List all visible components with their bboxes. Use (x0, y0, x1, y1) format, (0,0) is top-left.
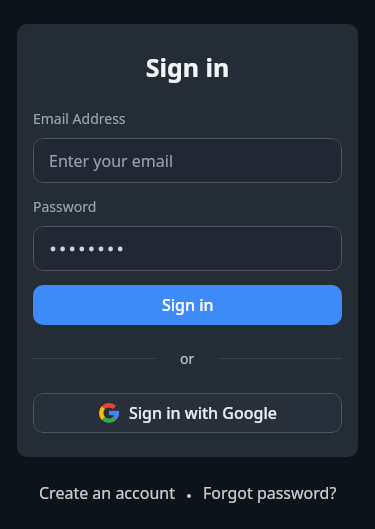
staticText: or (180, 349, 195, 368)
staticText: Email Address (33, 109, 126, 128)
button[interactable] (33, 226, 342, 271)
button[interactable]: Enter your email (33, 138, 342, 183)
staticText: Enter your email (49, 150, 174, 172)
staticText: Sign in (17, 50, 358, 84)
button[interactable]: Sign in with Google (33, 393, 342, 433)
button[interactable]: Create an account (39, 482, 175, 504)
staticText: Password (33, 197, 97, 216)
button[interactable]: Sign in (33, 285, 342, 325)
staticText: Sign in with Google (129, 402, 277, 424)
staticText: Sign in (162, 294, 214, 316)
button[interactable]: Forgot password? (203, 482, 337, 504)
